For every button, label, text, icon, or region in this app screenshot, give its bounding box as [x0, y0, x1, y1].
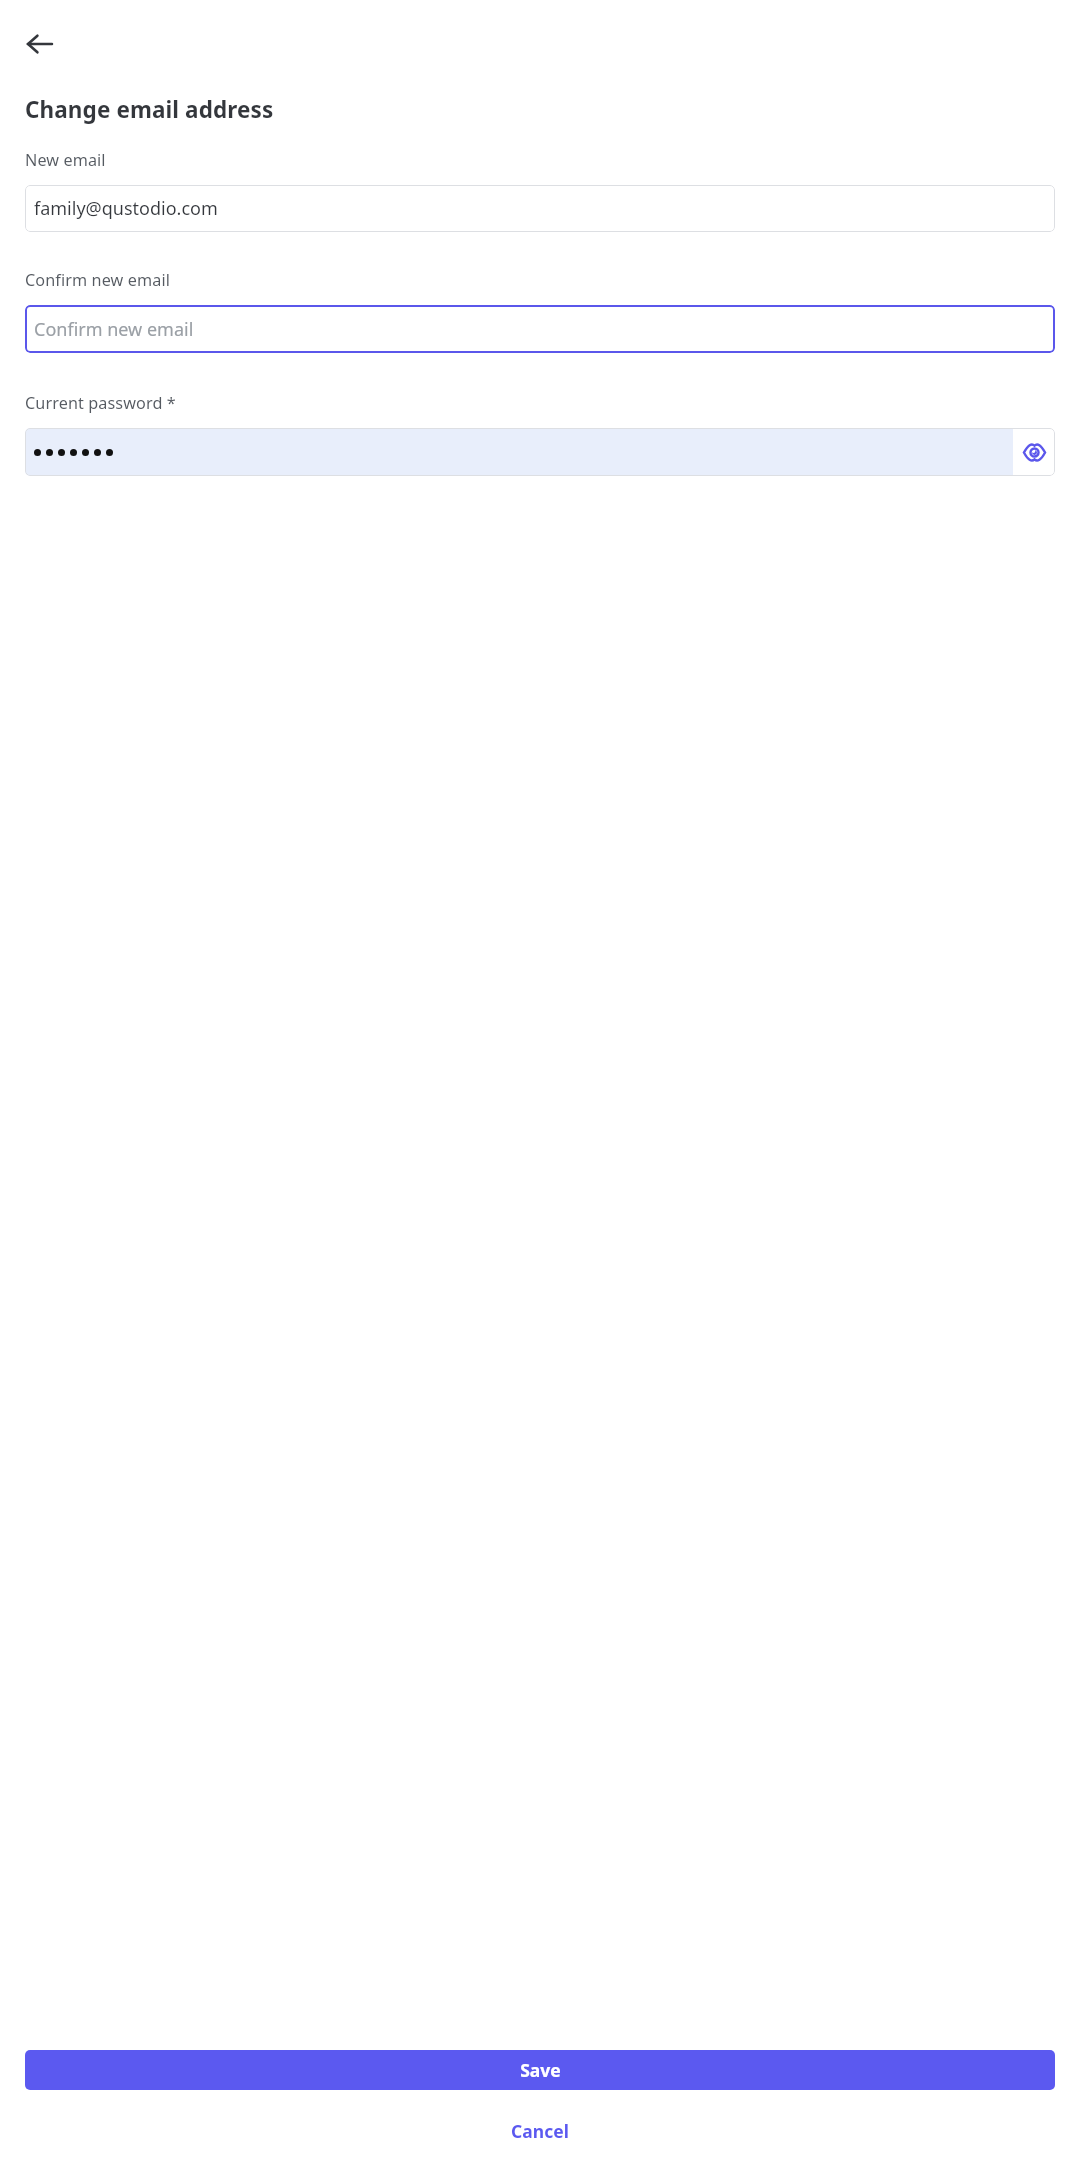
- staticText: Confirm new email: [34, 317, 194, 342]
- button[interactable]: Back: [14, 18, 66, 70]
- button[interactable]: Confirm new email: [25, 305, 1055, 353]
- staticText: Current password *: [25, 392, 176, 414]
- button[interactable]: Save: [25, 2050, 1055, 2090]
- button[interactable]: Show password: [1013, 428, 1055, 476]
- staticText: Cancel: [511, 2119, 569, 2143]
- staticText: Save: [520, 2058, 561, 2082]
- button[interactable]: [25, 428, 1013, 476]
- button[interactable]: family@qustodio.com: [25, 185, 1055, 232]
- button[interactable]: Cancel: [0, 2112, 1080, 2150]
- staticText: New email: [25, 149, 106, 171]
- staticText: Confirm new email: [25, 269, 170, 291]
- staticText: family@qustodio.com: [34, 196, 218, 221]
- staticText: Change email address: [25, 94, 274, 125]
